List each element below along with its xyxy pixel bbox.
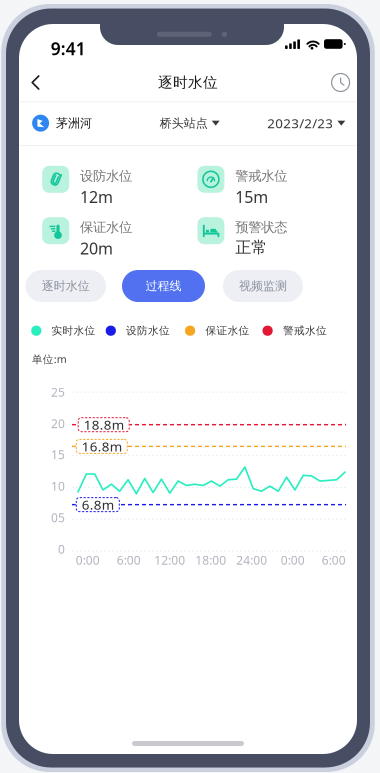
staticText: 视频监测: [239, 279, 287, 293]
staticText: 设防水位: [126, 324, 170, 337]
staticText: 正常: [235, 238, 267, 257]
button[interactable]: 预警状态: [197, 217, 287, 247]
staticText: 警戒水位: [235, 168, 287, 184]
staticText: 15m: [235, 186, 268, 207]
staticText: 2023/2/23: [267, 114, 333, 132]
button[interactable]: 茅洲河: [29, 101, 95, 145]
button[interactable]: 历史记录: [325, 64, 357, 101]
staticText: 预警状态: [235, 219, 287, 236]
staticText: 茅洲河: [56, 116, 92, 130]
staticText: 20: [51, 415, 65, 431]
button[interactable]: 保证水位: [42, 217, 132, 247]
staticText: 12:00: [154, 552, 185, 568]
staticText: 9:41: [51, 37, 86, 60]
staticText: 过程线: [145, 279, 181, 293]
staticText: 逐时水位: [158, 73, 218, 91]
staticText: 0:00: [281, 552, 305, 568]
staticText: 10: [51, 478, 65, 494]
button[interactable]: 警戒水位: [197, 166, 287, 196]
button[interactable]: 过程线: [122, 270, 205, 302]
staticText: 16.8m: [82, 437, 122, 455]
staticText: 保证水位: [80, 219, 132, 236]
staticText: 18.8m: [84, 416, 124, 433]
button[interactable]: 返回: [20, 64, 52, 101]
staticText: 0:00: [76, 552, 100, 568]
staticText: 警戒水位: [283, 324, 327, 337]
button[interactable]: 设防水位: [42, 166, 132, 196]
button[interactable]: 视频监测: [223, 270, 303, 302]
staticText: 桥头站点: [160, 116, 208, 130]
button[interactable]: 2023/2/23: [264, 101, 348, 145]
staticText: 05: [51, 510, 65, 525]
staticText: 设防水位: [80, 168, 132, 184]
staticText: 保证水位: [205, 324, 249, 337]
staticText: 单位:m: [32, 352, 67, 366]
staticText: 逐时水位: [42, 279, 90, 293]
staticText: 24:00: [236, 552, 267, 568]
button[interactable]: 桥头站点: [157, 101, 223, 145]
staticText: 6.8m: [82, 496, 114, 513]
staticText: 20m: [80, 238, 113, 259]
staticText: 12m: [80, 186, 113, 207]
staticText: 18:00: [195, 552, 226, 568]
staticText: 15: [51, 447, 65, 462]
staticText: 6:00: [117, 552, 141, 568]
staticText: 0: [58, 541, 65, 557]
staticText: 6:00: [322, 552, 346, 568]
button[interactable]: 逐时水位: [26, 270, 106, 302]
staticText: 25: [51, 384, 65, 400]
staticText: 实时水位: [52, 324, 96, 337]
